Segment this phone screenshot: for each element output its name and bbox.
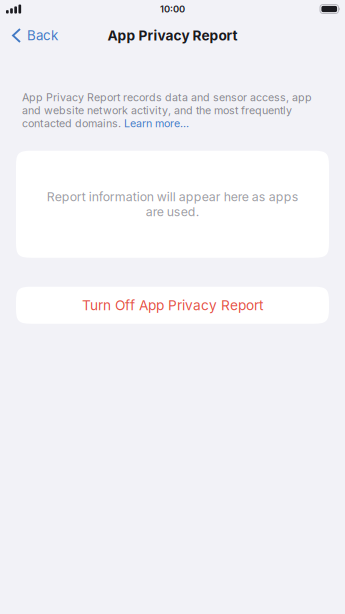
staticText: Report information will appear here as a…: [46, 189, 298, 219]
staticText: contacted domains.: [22, 117, 124, 130]
button[interactable]: Turn Off App Privacy Report: [16, 287, 329, 324]
staticText: Learn more...: [124, 117, 189, 130]
staticText: Turn Off App Privacy Report: [82, 297, 263, 313]
button[interactable]: Learn more...: [124, 117, 189, 130]
staticText: Back: [27, 27, 58, 43]
staticText: 10:00: [160, 3, 185, 15]
button[interactable]: Back: [0, 22, 68, 48]
staticText: App Privacy Report: [107, 27, 237, 44]
staticText: App Privacy Report records data and sens…: [22, 91, 312, 117]
